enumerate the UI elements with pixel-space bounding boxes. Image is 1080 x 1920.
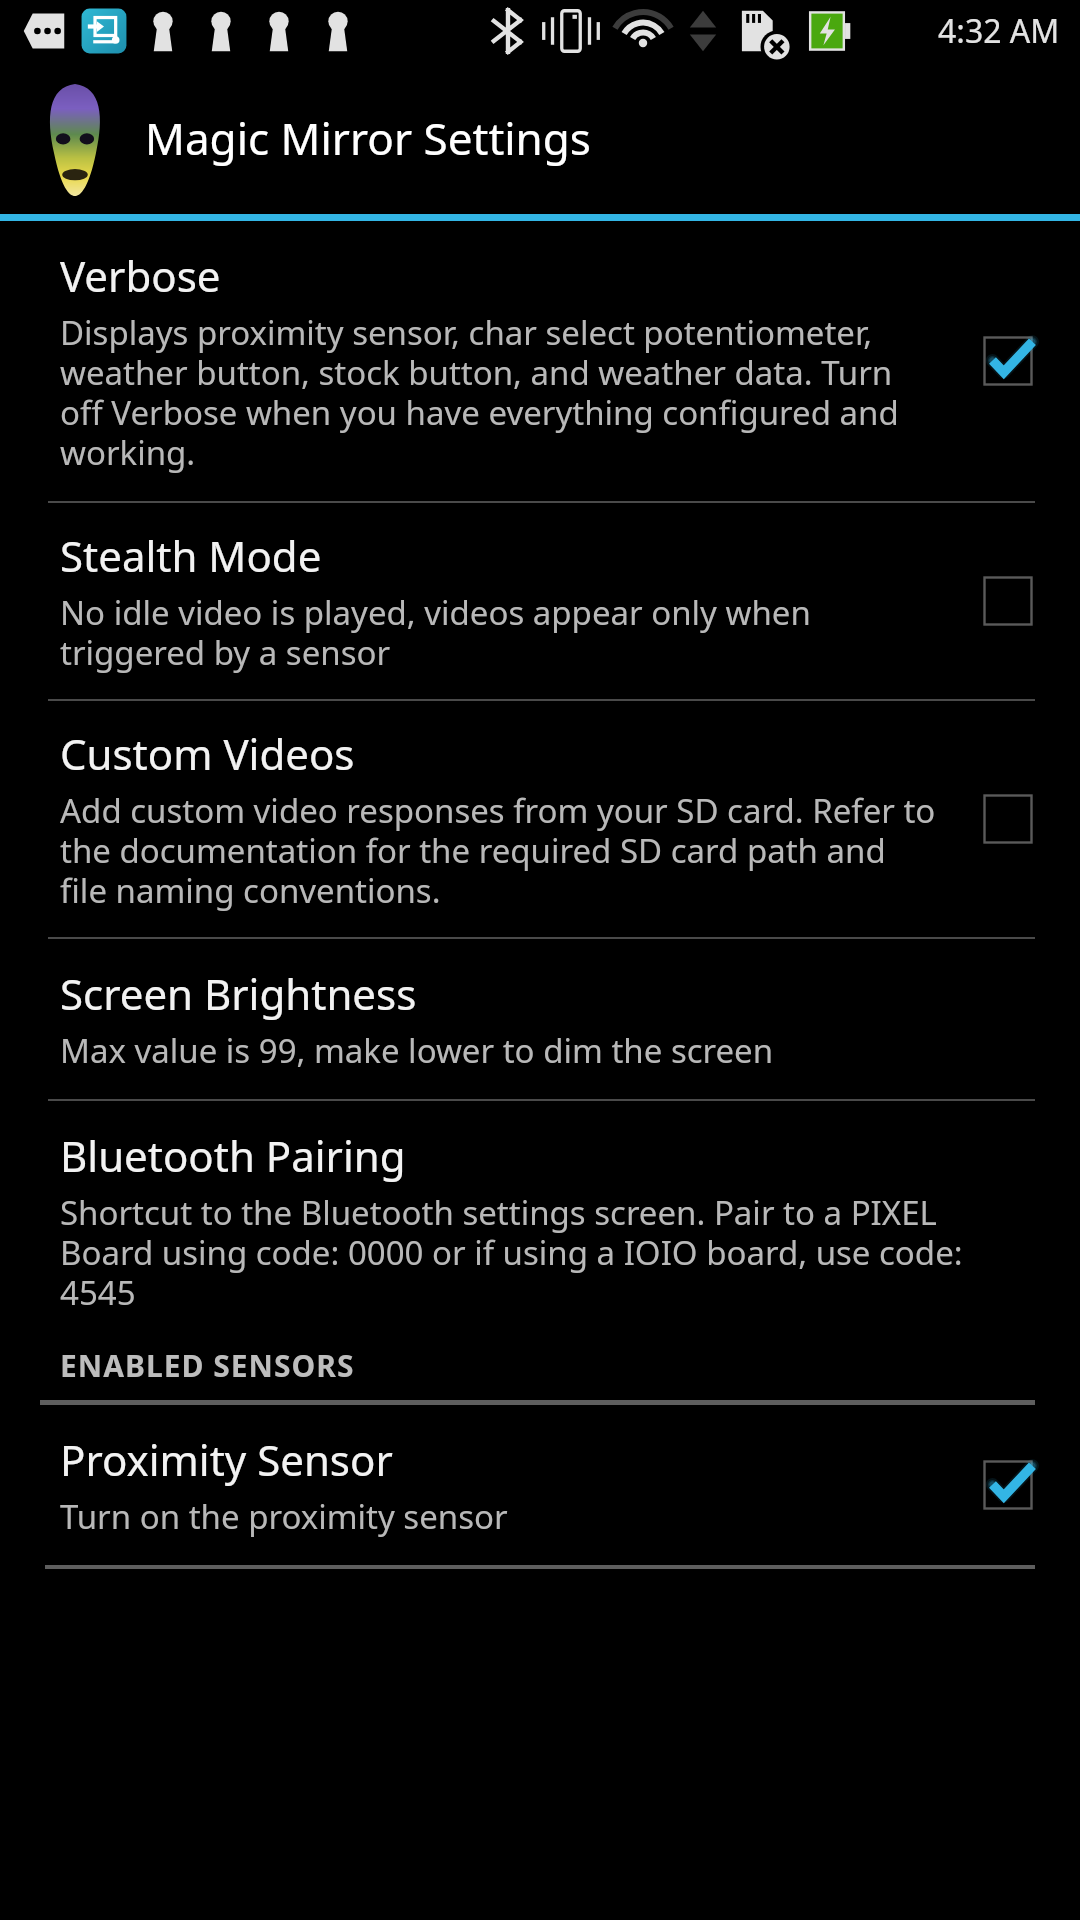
staticText: Magic Mirror Settings — [145, 108, 591, 168]
staticText: Turn on the proximity sensor — [60, 1494, 508, 1539]
button[interactable]: Custom Videos — [0, 701, 1080, 937]
staticText: Verbose — [60, 247, 221, 304]
button[interactable]: Stealth Mode — [0, 503, 1080, 699]
staticText: Stealth Mode — [60, 527, 322, 584]
button[interactable]: Bluetooth Pairing — [0, 1101, 1080, 1329]
staticText: Displays proximity sensor, char select p… — [60, 310, 940, 475]
staticText: ENABLED SENSORS — [60, 1345, 355, 1386]
staticText: Screen Brightness — [60, 965, 417, 1022]
staticText: Max value is 99, make lower to dim the s… — [60, 1028, 774, 1073]
button[interactable]: Verbose — [960, 313, 1056, 409]
button[interactable]: Verbose — [0, 221, 1080, 501]
staticText: 4:32 AM — [938, 9, 1060, 53]
staticText: Shortcut to the Bluetooth settings scree… — [60, 1190, 1036, 1315]
button[interactable]: ENABLED SENSORS — [0, 1329, 1080, 1400]
staticText: Bluetooth Pairing — [60, 1127, 406, 1184]
staticText: Proximity Sensor — [60, 1431, 393, 1488]
staticText: Add custom video responses from your SD … — [60, 788, 940, 913]
staticText: No idle video is played, videos appear o… — [60, 590, 940, 675]
button[interactable]: Stealth Mode — [960, 553, 1056, 649]
button[interactable]: Proximity Sensor — [0, 1405, 1080, 1565]
button[interactable]: Proximity Sensor — [960, 1437, 1056, 1533]
staticText: Custom Videos — [60, 725, 355, 782]
button[interactable]: Screen Brightness — [0, 939, 1080, 1099]
button[interactable]: Custom Videos — [960, 771, 1056, 867]
